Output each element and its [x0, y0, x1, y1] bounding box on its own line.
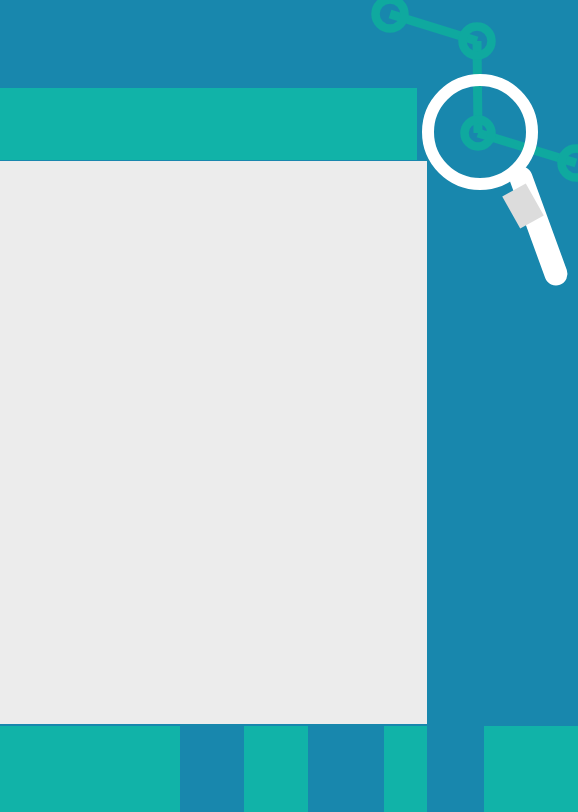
- other: Search network: [0, 0, 578, 812]
